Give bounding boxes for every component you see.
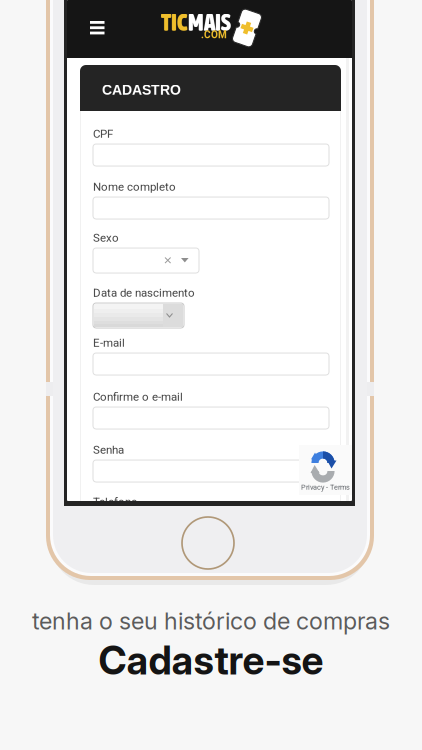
button[interactable]: TICMAIS.COM [161,7,266,49]
staticText: CADASTRO [102,82,181,98]
staticText: E-mail [93,336,125,349]
button[interactable]: Home [182,517,234,569]
staticText: Confirme o e-mail [93,390,183,403]
staticText: tenha o seu histórico de compras [32,607,390,635]
staticText: Sexo [93,231,119,244]
button[interactable]: Confirme o e-mail [93,390,333,429]
staticText: Cadastre-se [98,637,323,684]
button[interactable]: Sexo [93,231,333,273]
button[interactable]: E-mail [93,336,333,375]
staticText: .COM [201,29,227,41]
staticText: Data de nascimento [93,286,195,299]
staticText: Telefone [93,495,137,508]
staticText: Nome completo [93,180,176,193]
button[interactable]: Nome completo [93,180,333,219]
button[interactable]: Senha [93,443,333,482]
button[interactable]: CPF [93,127,333,166]
button[interactable]: Menu [80,11,114,44]
staticText: TIC [161,9,188,36]
staticText: Privacy - Terms [301,483,350,492]
staticText: Senha [93,443,124,456]
staticText: MAIS [188,9,231,36]
staticText: CPF [93,127,113,140]
button[interactable]: Data de nascimento [93,286,333,328]
